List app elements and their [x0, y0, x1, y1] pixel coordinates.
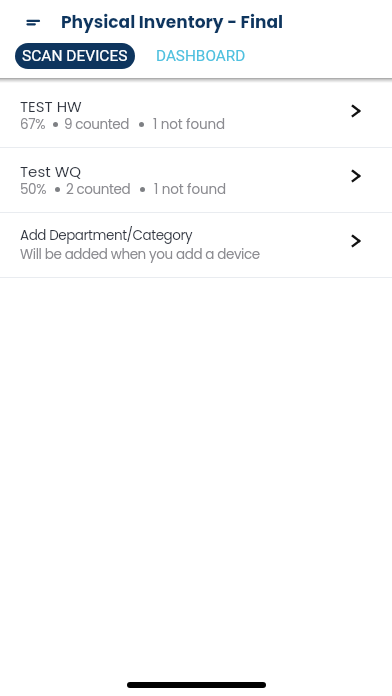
button[interactable]: Open navigation menu	[10, 8, 54, 52]
other: Open Add Department/Category	[334, 221, 392, 269]
staticText: Test WQ	[20, 161, 82, 182]
button[interactable]: Add Department/Category	[0, 213, 392, 277]
button[interactable]: TEST HW	[0, 83, 392, 147]
staticText: TEST HW	[20, 96, 82, 117]
staticText: Physical Inventory - Final	[61, 10, 283, 34]
button[interactable]: DASHBOARD	[135, 43, 260, 69]
staticText: Will be added when you add a device	[20, 245, 260, 264]
staticText: 1 not found	[153, 115, 226, 131]
staticText: 50%	[20, 180, 47, 196]
staticText: Add Department/Category	[20, 226, 193, 245]
button[interactable]: Test WQ	[0, 148, 392, 212]
staticText: 67%	[20, 115, 45, 131]
staticText: 2 counted	[66, 180, 131, 196]
button[interactable]: SCAN DEVICES	[15, 43, 135, 69]
other: Open TEST HW	[334, 91, 392, 139]
staticText: 9 counted	[64, 115, 130, 131]
staticText: SCAN DEVICES	[22, 47, 128, 65]
other: Open Test WQ	[334, 156, 392, 204]
staticText: DASHBOARD	[156, 47, 246, 65]
staticText: 1 not found	[154, 180, 227, 196]
